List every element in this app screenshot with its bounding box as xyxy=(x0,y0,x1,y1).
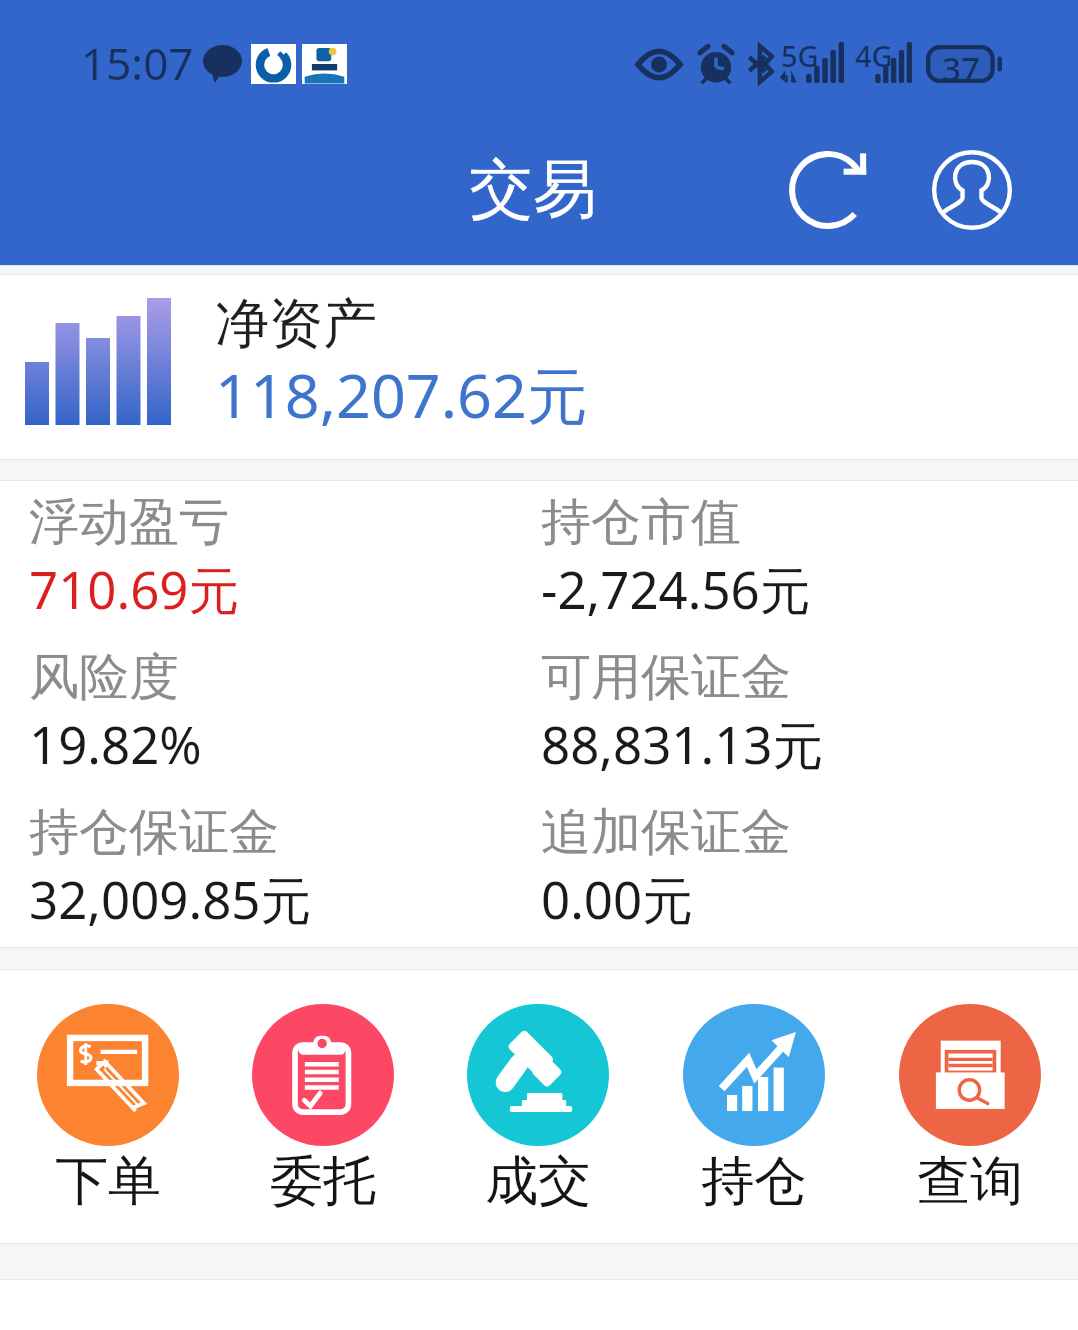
button[interactable]: 持仓 xyxy=(646,970,862,1243)
staticText: 可用保证金 xyxy=(541,646,791,709)
staticText: -2,724.56元 xyxy=(541,554,811,624)
button[interactable]: 下单 xyxy=(0,970,215,1243)
staticText: 5G xyxy=(781,36,819,75)
staticText: 37 xyxy=(942,46,980,91)
staticText: 浮动盈亏 xyxy=(29,491,229,554)
staticText: 交易 xyxy=(469,149,597,230)
staticText: 持仓市值 xyxy=(541,491,741,554)
button[interactable]: Refresh xyxy=(762,124,894,256)
staticText: 下单 xyxy=(55,1148,161,1215)
staticText: 委托 xyxy=(270,1148,376,1215)
staticText: 710.69元 xyxy=(29,554,240,624)
button[interactable]: Account xyxy=(906,124,1038,256)
button[interactable]: 净资产 xyxy=(0,275,1078,459)
button[interactable]: 查询 xyxy=(862,970,1078,1243)
staticText: 32,009.85元 xyxy=(29,864,312,934)
staticText: 查询 xyxy=(917,1148,1023,1215)
staticText: 成交 xyxy=(485,1148,591,1215)
staticText: 持仓 xyxy=(701,1148,807,1215)
staticText: 持仓保证金 xyxy=(29,801,279,864)
staticText: 88,831.13元 xyxy=(541,709,824,779)
staticText: 19.82% xyxy=(29,709,202,778)
staticText: 118,207.62元 xyxy=(215,353,588,436)
staticText: 风险度 xyxy=(29,646,179,709)
button[interactable]: 委托 xyxy=(215,970,430,1243)
staticText: 净资产 xyxy=(215,290,377,358)
staticText: 0.00元 xyxy=(541,864,694,934)
button[interactable]: 成交 xyxy=(430,970,646,1243)
staticText: 追加保证金 xyxy=(541,801,791,864)
staticText: 4G xyxy=(855,36,893,75)
staticText: 15:07 xyxy=(81,33,194,93)
